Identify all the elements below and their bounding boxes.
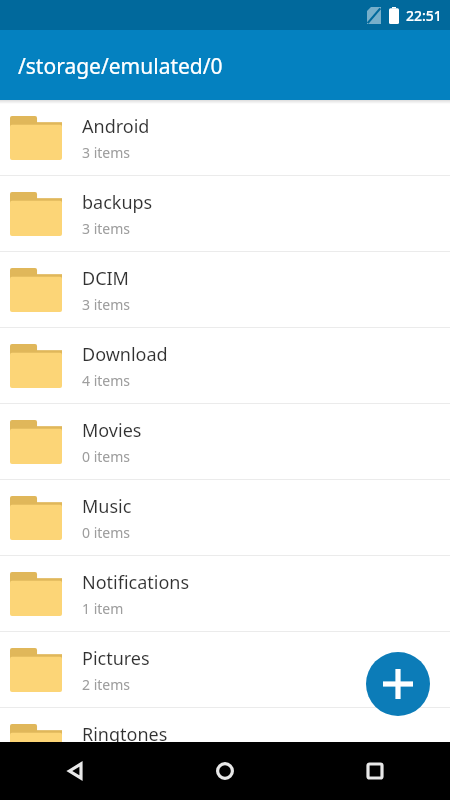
- button[interactable]: Notifications: [0, 556, 450, 631]
- staticText: 3 items: [82, 295, 131, 314]
- button[interactable]: Back: [0, 742, 150, 800]
- button[interactable]: Download: [0, 328, 450, 403]
- button[interactable]: DCIM: [0, 252, 450, 327]
- staticText: Movies: [82, 418, 142, 443]
- button[interactable]: Home: [150, 742, 300, 800]
- button[interactable]: Ringtones: [0, 708, 450, 783]
- staticText: 22:51: [406, 6, 442, 25]
- button[interactable]: Pictures: [0, 632, 450, 707]
- staticText: 1 item: [82, 599, 124, 618]
- staticText: Android: [82, 114, 150, 139]
- staticText: 0 items: [82, 523, 131, 542]
- button[interactable]: backups: [0, 176, 450, 251]
- button[interactable]: Music: [0, 480, 450, 555]
- staticText: 2 items: [82, 675, 131, 694]
- staticText: 0 items: [82, 447, 131, 466]
- staticText: Notifications: [82, 570, 190, 595]
- staticText: 3 items: [82, 219, 131, 238]
- button[interactable]: Android: [0, 100, 450, 175]
- staticText: 4 items: [82, 371, 131, 390]
- staticText: 1 item: [82, 751, 124, 770]
- staticText: Music: [82, 494, 132, 519]
- staticText: /storage/emulated/0: [18, 52, 223, 81]
- staticText: Pictures: [82, 646, 150, 671]
- staticText: DCIM: [82, 266, 129, 291]
- button[interactable]: Recents: [300, 742, 450, 800]
- staticText: 3 items: [82, 143, 131, 162]
- staticText: Download: [82, 342, 168, 367]
- staticText: backups: [82, 190, 153, 215]
- button[interactable]: Add: [366, 652, 430, 716]
- staticText: Ringtones: [82, 722, 168, 747]
- button[interactable]: Movies: [0, 404, 450, 479]
